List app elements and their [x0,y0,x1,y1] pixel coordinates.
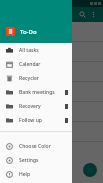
staticText: Bank meetings [19,89,55,96]
staticText: Follow up [19,117,42,124]
button[interactable]: Calendar [0,57,72,71]
button[interactable]: Follow up [0,113,72,127]
staticText: Recovery [19,103,41,110]
button[interactable]: Settings [0,153,72,167]
button[interactable]: More options [88,9,99,20]
staticText: Help [19,171,31,178]
staticText: Calendar [19,61,41,68]
staticText: To-Do [20,28,37,36]
staticText: Recycler [19,75,39,82]
button[interactable]: Choose Color [0,139,72,153]
button[interactable]: Bank meetings [0,85,72,99]
button[interactable]: All tasks [0,43,72,57]
staticText: All tasks [19,47,39,54]
button[interactable]: Recovery [0,99,72,113]
staticText: Choose Color [19,143,51,150]
staticText: Settings [19,157,39,164]
button[interactable]: Search [77,9,88,20]
button[interactable]: Recycler [0,71,72,85]
button[interactable]: Help [0,167,72,181]
button[interactable]: Add task [83,163,97,177]
